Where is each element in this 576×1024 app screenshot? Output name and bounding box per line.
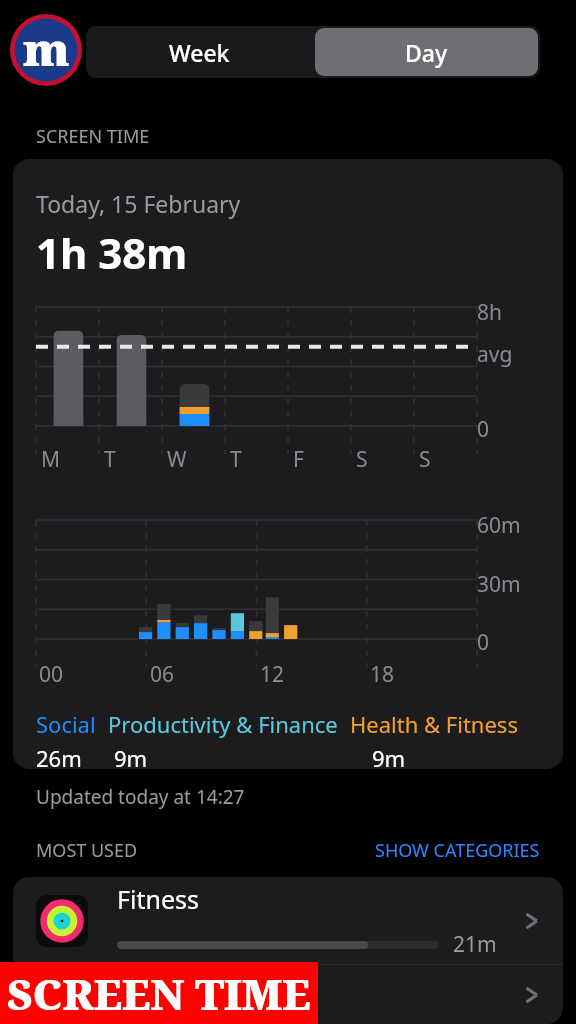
staticText: 21m bbox=[453, 930, 497, 959]
button[interactable]: Week bbox=[86, 26, 313, 78]
staticText: 0 bbox=[477, 415, 490, 444]
button[interactable]: Day bbox=[315, 28, 538, 76]
staticText: 1h 38m bbox=[36, 224, 188, 281]
staticText: SHOW CATEGORIES bbox=[375, 838, 540, 863]
staticText: 30m bbox=[477, 570, 521, 599]
staticText: F bbox=[293, 445, 304, 474]
staticText: Day bbox=[405, 37, 448, 68]
staticText: 12 bbox=[260, 660, 285, 689]
staticText: Today, 15 February bbox=[36, 188, 241, 219]
staticText: 60m bbox=[477, 511, 521, 540]
staticText: 8h bbox=[477, 298, 502, 327]
button[interactable]: Fitness bbox=[13, 877, 563, 964]
button[interactable]: Open details bbox=[13, 965, 563, 1024]
staticText: 26m bbox=[36, 743, 82, 769]
staticText: 9m bbox=[114, 743, 148, 769]
staticText: MOST USED bbox=[36, 838, 138, 863]
button[interactable]: Home bbox=[8, 12, 84, 88]
button[interactable]: Today, 15 February bbox=[13, 159, 563, 769]
staticText: T bbox=[230, 445, 242, 474]
staticText: 18 bbox=[370, 660, 395, 689]
staticText: S bbox=[356, 445, 368, 474]
staticText: T bbox=[104, 445, 116, 474]
staticText: 06 bbox=[150, 660, 175, 689]
staticText: avg bbox=[477, 340, 513, 369]
other: Open details bbox=[521, 984, 543, 1006]
staticText: Updated today at 14:27 bbox=[36, 784, 245, 810]
staticText: SCREEN TIME bbox=[36, 124, 150, 149]
other: Open details bbox=[521, 910, 543, 932]
staticText: SCREEN TIME bbox=[7, 965, 311, 1022]
staticText: W bbox=[167, 445, 187, 474]
staticText: Productivity & Finance bbox=[108, 709, 338, 739]
staticText: S bbox=[419, 445, 431, 474]
staticText: 00 bbox=[39, 660, 64, 689]
staticText: Fitness bbox=[117, 882, 199, 916]
staticText: Health & Fitness bbox=[350, 709, 518, 739]
staticText: m bbox=[23, 17, 70, 80]
staticText: M bbox=[41, 445, 61, 474]
button[interactable]: SHOW CATEGORIES bbox=[375, 838, 540, 863]
staticText: 9m bbox=[372, 743, 406, 769]
staticText: Social bbox=[36, 709, 96, 739]
staticText: Week bbox=[169, 37, 230, 68]
staticText: 0 bbox=[477, 628, 490, 657]
